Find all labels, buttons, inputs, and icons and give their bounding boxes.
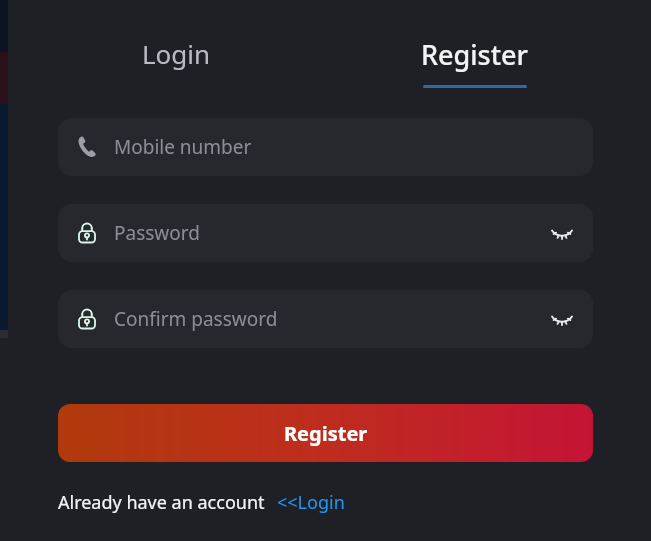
button[interactable]: Register: [325, 36, 623, 88]
button[interactable]: Mobile number: [58, 118, 593, 176]
button[interactable]: Show password: [539, 296, 585, 342]
button[interactable]: Show password: [539, 210, 585, 256]
staticText: Register: [421, 36, 528, 73]
button[interactable]: <<Login: [277, 490, 345, 515]
staticText: Mobile number: [114, 134, 252, 160]
button[interactable]: Confirm password: [58, 290, 593, 348]
staticText: Confirm password: [114, 306, 278, 332]
button[interactable]: Login: [28, 36, 325, 86]
button[interactable]: Password: [58, 204, 593, 262]
staticText: Login: [142, 36, 211, 71]
button[interactable]: Register: [58, 404, 593, 462]
staticText: Register: [284, 420, 368, 447]
staticText: <<Login: [277, 490, 345, 515]
staticText: Already have an account: [58, 490, 265, 515]
staticText: Password: [114, 220, 200, 246]
